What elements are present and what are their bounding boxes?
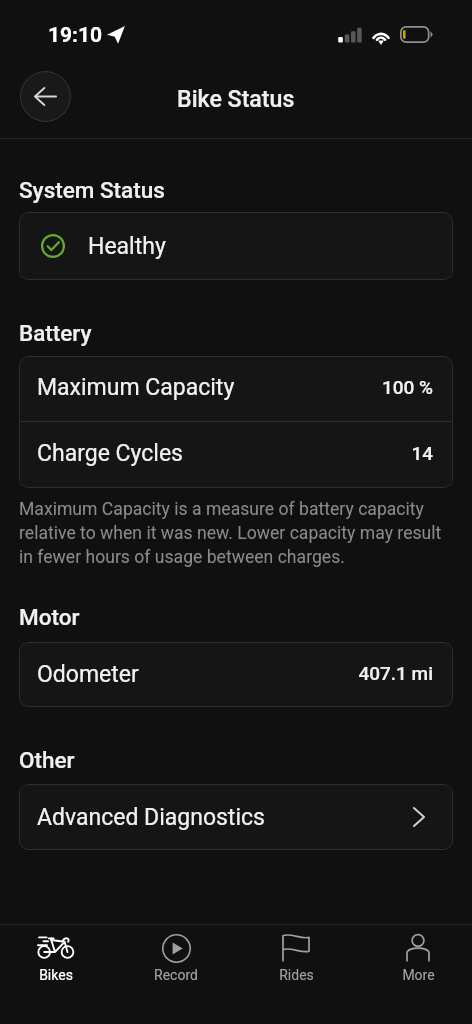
staticText: 407.1 mi [358,662,433,684]
button[interactable] [19,784,453,850]
staticText: Battery [19,320,92,346]
button[interactable]: More [364,928,472,996]
staticText: 14 [411,442,433,464]
button[interactable]: Rides [242,928,350,996]
staticText: Record [154,967,198,983]
staticText: 19:10 [48,23,103,48]
button[interactable]: Back [20,71,71,122]
staticText: Bike Status [177,85,295,112]
staticText: Motor [19,604,80,630]
staticText: Other [19,747,75,773]
button[interactable]: Bikes [2,928,110,996]
staticText: Healthy [88,233,166,260]
staticText: Rides [279,967,314,983]
staticText: 100 % [381,376,433,398]
staticText: More [402,967,435,983]
staticText: Maximum Capacity [37,374,235,401]
staticText: System Status [19,177,165,203]
staticText: Bikes [39,967,73,983]
staticText: Maximum Capacity is a measure of battery… [19,499,457,567]
staticText: Advanced Diagnostics [37,804,265,831]
staticText: Odometer [37,661,139,688]
button[interactable]: Record [122,928,230,996]
staticText: Charge Cycles [37,440,183,467]
